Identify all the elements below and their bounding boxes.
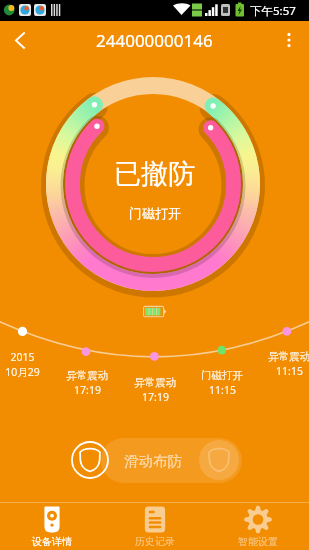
button[interactable]: More options (269, 21, 309, 59)
staticText: 滑动布防 (124, 452, 182, 470)
staticText: 异常震动 (268, 350, 309, 363)
button[interactable]: 设备详情 (0, 503, 103, 550)
button[interactable]: Back (0, 21, 40, 59)
staticText: 17:19 (74, 383, 101, 397)
staticText: 244000000146 (96, 29, 213, 52)
staticText: 异常震动 (66, 369, 108, 382)
staticText: 下午5:57 (250, 3, 296, 19)
staticText: 2015 (10, 350, 35, 364)
staticText: 智能设置 (238, 535, 278, 548)
staticText: 门磁打开 (129, 205, 181, 221)
staticText: 11:15 (276, 364, 303, 378)
staticText: 门磁打开 (201, 369, 243, 382)
staticText: 11:15 (209, 383, 236, 397)
staticText: 已撤防 (114, 157, 195, 191)
button[interactable]: 滑动布防 (101, 438, 242, 483)
staticText: 历史记录 (135, 535, 175, 548)
staticText: 设备详情 (32, 535, 72, 548)
staticText: 异常震动 (134, 376, 176, 389)
staticText: 10月29 (5, 365, 40, 379)
staticText: 17:19 (142, 390, 169, 404)
button[interactable]: 智能设置 (206, 503, 309, 550)
button[interactable]: 历史记录 (103, 503, 206, 550)
button[interactable]: Slide to arm (71, 441, 109, 479)
